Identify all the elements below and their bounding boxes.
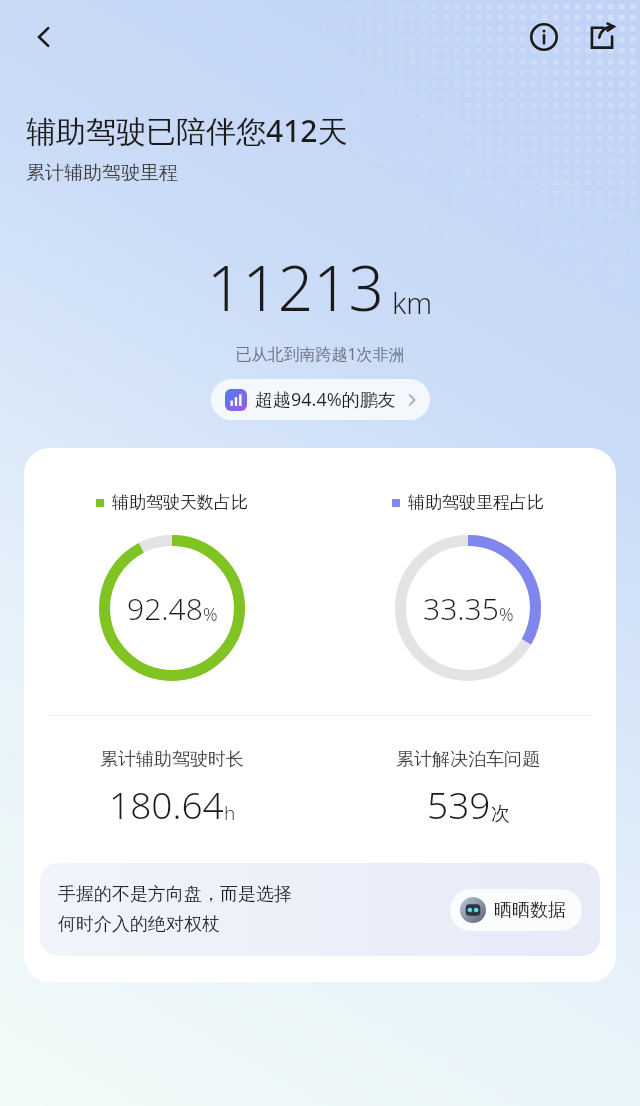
staticText: % (499, 602, 514, 627)
staticText: 180.64 (109, 779, 224, 829)
staticText: 次 (491, 802, 510, 826)
staticText: 辅助驾驶天数占比 (112, 492, 248, 513)
staticText: 晒晒数据 (494, 899, 566, 922)
staticText: 辅助驾驶里程占比 (408, 492, 544, 513)
staticText: % (203, 602, 218, 627)
staticText: 539 (427, 779, 491, 829)
staticText: 已从北到南跨越1次非洲 (0, 343, 640, 365)
staticText: 92.48 (127, 588, 203, 629)
button[interactable]: Back (16, 9, 72, 65)
staticText: 累计辅助驾驶里程 (26, 161, 178, 185)
button[interactable]: 晒晒数据 (450, 889, 582, 931)
staticText: 累计辅助驾驶时长 (100, 748, 244, 771)
staticText: km (392, 283, 433, 322)
staticText: h (224, 800, 236, 826)
staticText: 辅助驾驶已陪伴您412天 (26, 110, 348, 151)
staticText: 11213 (207, 245, 385, 329)
staticText: 超越94.4%的鹏友 (255, 387, 396, 412)
button[interactable]: Share (576, 11, 628, 63)
button[interactable]: 超越94.4%的鹏友 (211, 379, 430, 420)
staticText: 手握的不是方向盘，而是选择 何时介入的绝对权杖 (58, 883, 440, 936)
staticText: 33.35 (423, 588, 499, 629)
staticText: 累计解决泊车问题 (396, 748, 540, 771)
button[interactable]: Info (518, 11, 570, 63)
